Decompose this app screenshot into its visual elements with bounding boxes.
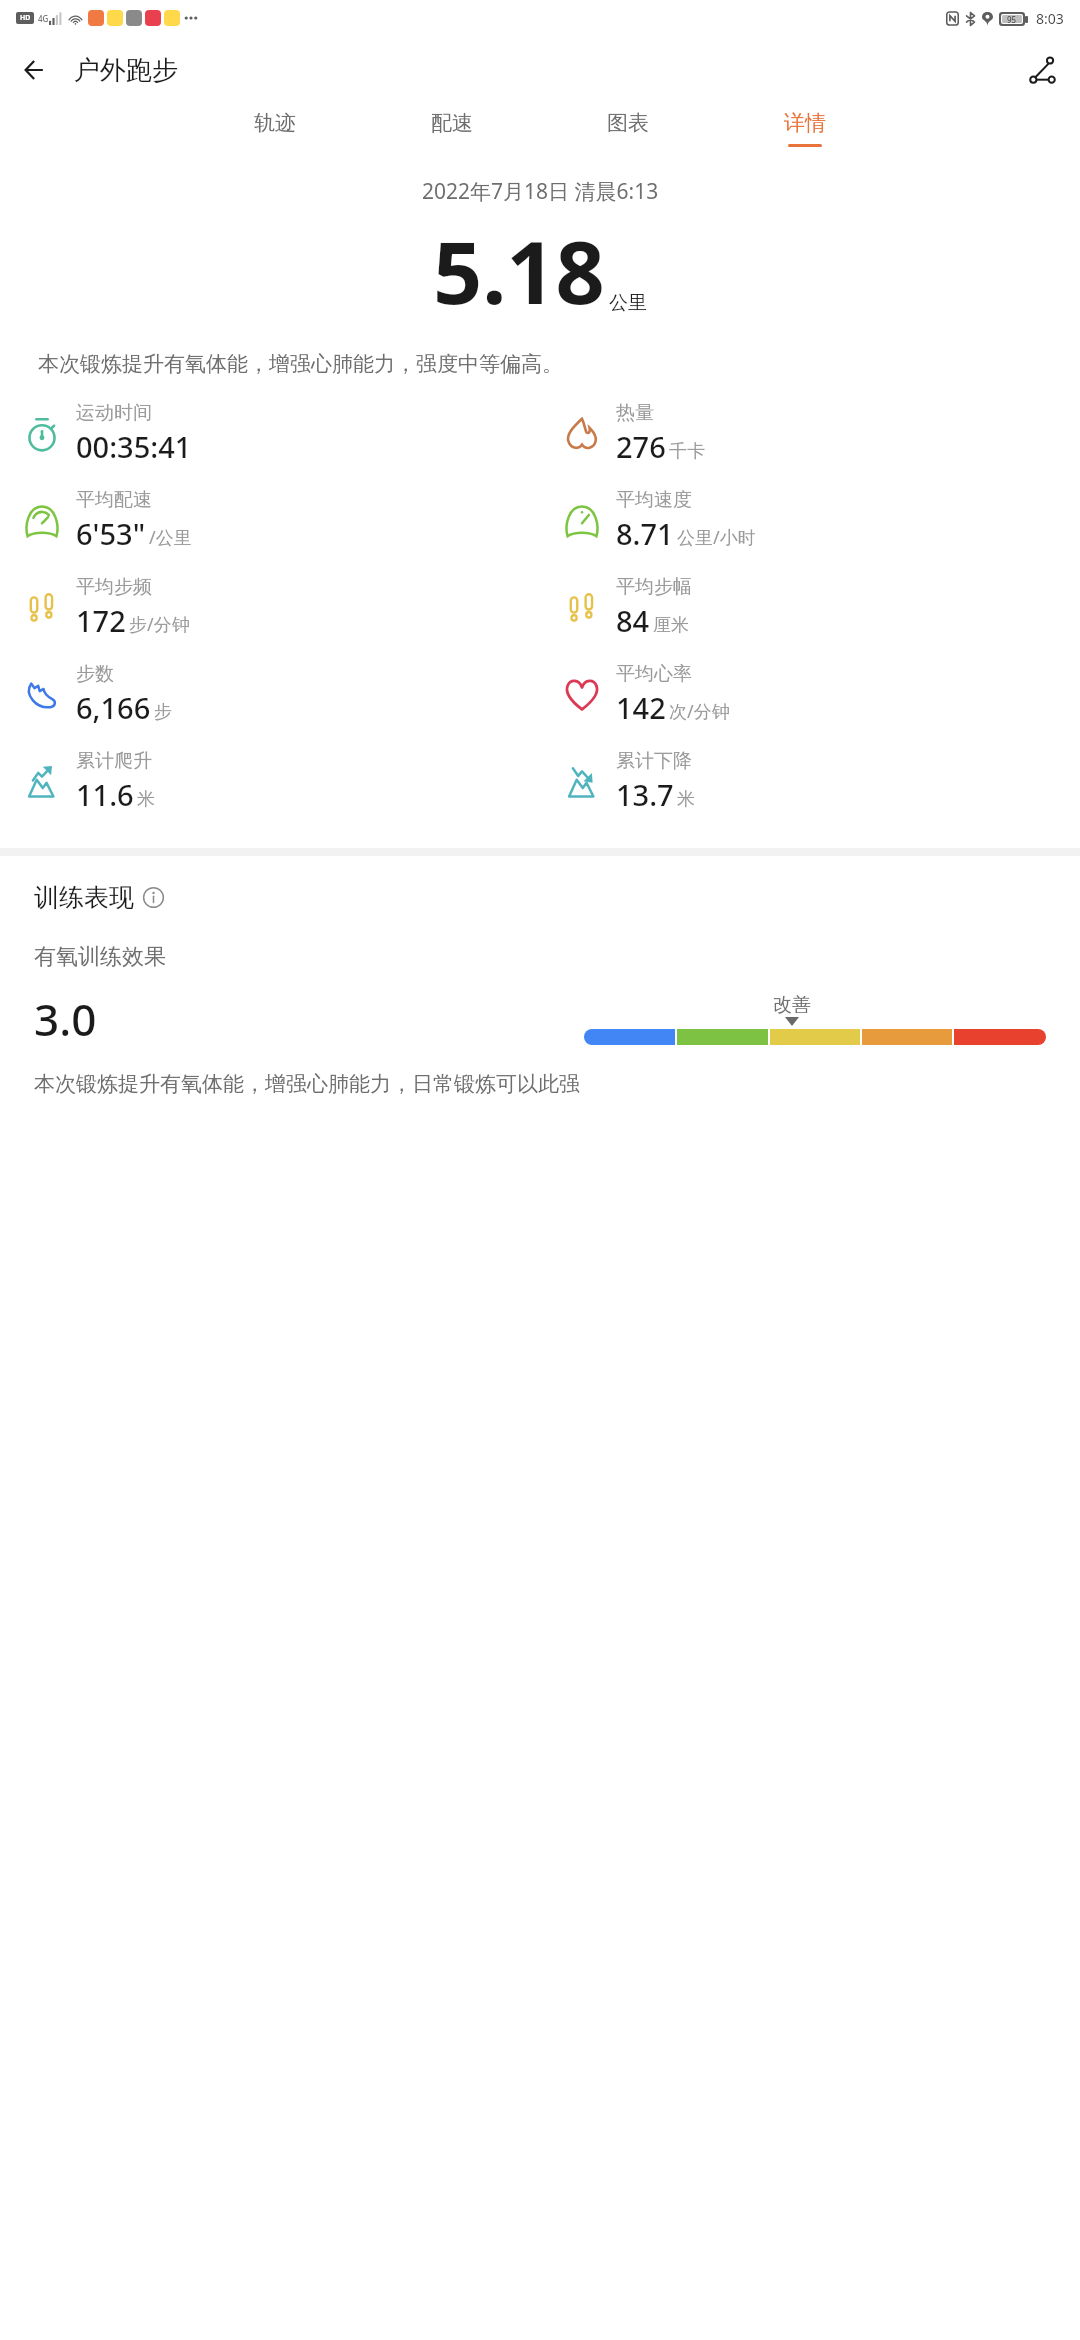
staticText: 4G (38, 13, 49, 24)
button[interactable]: 详情 (780, 104, 830, 153)
staticText: 11.6 (76, 775, 134, 814)
button[interactable]: 步数 (0, 658, 540, 731)
button[interactable]: 运动时间 (0, 397, 540, 470)
staticText: 公里/小时 (677, 525, 756, 550)
staticText: 本次锻炼提升有氧体能，增强心肺能力，日常锻炼可以此强 (34, 1071, 580, 1097)
staticText: 轨迹 (254, 110, 296, 136)
staticText: 改善 (773, 993, 811, 1017)
staticText: 6'53" (76, 514, 146, 553)
other: Info (143, 887, 164, 908)
staticText: HD (20, 13, 31, 23)
button[interactable]: 平均步幅 (540, 571, 1080, 644)
staticText: 次/分钟 (669, 699, 730, 724)
staticText: 95 (1007, 14, 1017, 24)
button[interactable]: 累计爬升 (0, 745, 540, 818)
staticText: 142 (616, 688, 666, 727)
button[interactable]: 热量 (540, 397, 1080, 470)
staticText: 详情 (784, 110, 826, 136)
button[interactable]: 训练表现 (34, 882, 164, 913)
button[interactable]: 平均配速 (0, 484, 540, 557)
button[interactable]: 图表 (603, 104, 653, 153)
staticText: 84 (616, 601, 650, 640)
staticText: 步 (154, 701, 172, 724)
staticText: 8:03 (1036, 9, 1064, 28)
button[interactable]: 平均心率 (540, 658, 1080, 731)
staticText: 13.7 (616, 775, 674, 814)
staticText: 2022年7月18日 清晨6:13 (422, 177, 659, 206)
staticText: 平均速度 (616, 488, 692, 512)
staticText: 172 (76, 601, 126, 640)
staticText: 3.0 (34, 989, 97, 1049)
staticText: 米 (137, 788, 155, 811)
staticText: 公里 (609, 291, 647, 315)
staticText: 配速 (431, 110, 473, 136)
staticText: 6,166 (76, 688, 151, 727)
staticText: 训练表现 (34, 882, 134, 913)
staticText: 8.71 (616, 514, 674, 553)
staticText: 图表 (607, 110, 649, 136)
staticText: 累计爬升 (76, 749, 152, 773)
staticText: 厘米 (653, 614, 689, 637)
button[interactable]: 平均步频 (0, 571, 540, 644)
staticText: 热量 (616, 401, 654, 425)
staticText: 平均心率 (616, 662, 692, 686)
button[interactable]: Back (10, 44, 62, 96)
staticText: 户外跑步 (74, 54, 178, 87)
staticText: 累计下降 (616, 749, 692, 773)
button[interactable]: 平均速度 (540, 484, 1080, 557)
staticText: 5.18 (433, 212, 605, 329)
button[interactable]: 配速 (427, 104, 477, 153)
staticText: 276 (616, 427, 666, 466)
staticText: 有氧训练效果 (34, 943, 166, 971)
staticText: 步数 (76, 662, 114, 686)
staticText: 00:35:41 (76, 427, 192, 466)
staticText: 本次锻炼提升有氧体能，增强心肺能力，强度中等偏高。 (38, 351, 1042, 377)
button[interactable]: Share (1016, 44, 1068, 96)
button[interactable]: 轨迹 (250, 104, 300, 153)
staticText: 平均步频 (76, 575, 152, 599)
staticText: 平均配速 (76, 488, 152, 512)
staticText: /公里 (149, 525, 192, 550)
button[interactable]: 累计下降 (540, 745, 1080, 818)
staticText: 步/分钟 (129, 612, 190, 637)
staticText: 米 (677, 788, 695, 811)
staticText: 平均步幅 (616, 575, 692, 599)
staticText: 运动时间 (76, 401, 152, 425)
staticText: 千卡 (669, 440, 705, 463)
